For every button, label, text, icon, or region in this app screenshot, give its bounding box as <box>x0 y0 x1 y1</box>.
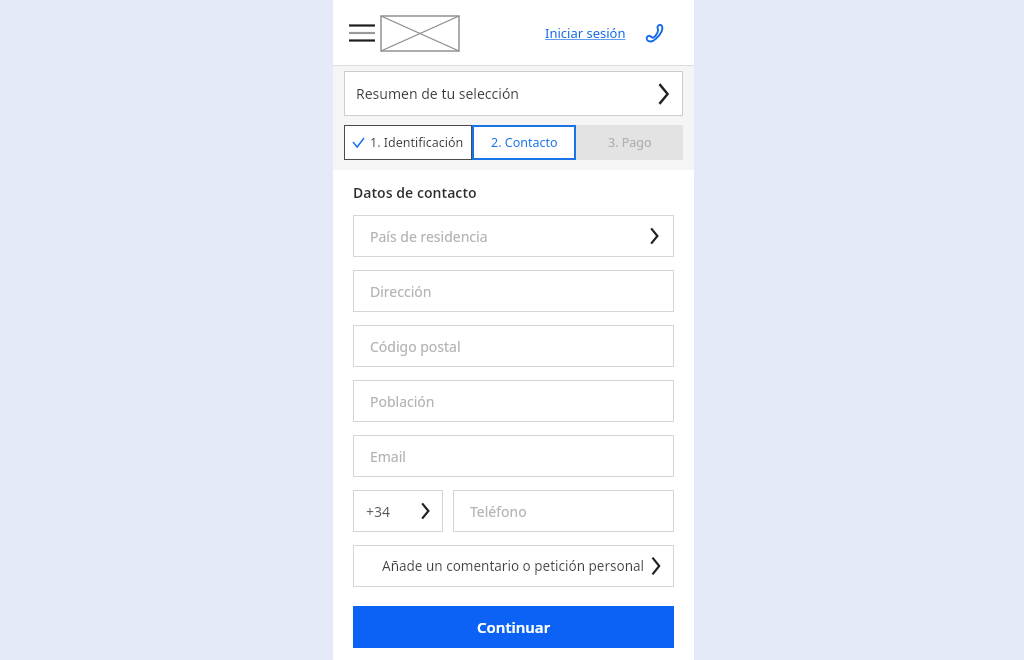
button[interactable]: Código postal <box>353 325 674 367</box>
button[interactable]: Teléfono <box>453 490 674 532</box>
button[interactable]: Dirección <box>353 270 674 312</box>
button[interactable]: Logo <box>381 16 459 51</box>
button[interactable]: 2. Contacto <box>472 125 576 160</box>
staticText: 2. Contacto <box>491 134 558 151</box>
button[interactable]: Email <box>353 435 674 477</box>
button[interactable]: Resumen de tu selección <box>344 71 683 116</box>
staticText: Código postal <box>370 337 461 356</box>
button[interactable]: Continuar <box>353 606 674 648</box>
staticText: +34 <box>366 502 391 521</box>
staticText: País de residencia <box>370 227 488 246</box>
staticText: 1. Identificación <box>370 134 464 151</box>
button[interactable]: País de residencia <box>353 215 674 257</box>
staticText: Datos de contacto <box>353 183 477 202</box>
staticText: Email <box>370 447 406 466</box>
button[interactable]: +34 <box>353 490 443 532</box>
staticText: Resumen de tu selección <box>356 84 520 103</box>
staticText: 3. Pago <box>608 134 652 151</box>
button[interactable]: Añade un comentario o petición personal <box>353 545 674 587</box>
staticText: Añade un comentario o petición personal <box>382 557 645 575</box>
staticText: Población <box>370 392 435 411</box>
button[interactable]: Iniciar sesión <box>545 24 626 42</box>
button[interactable]: 1. Identificación <box>344 125 472 160</box>
staticText: Dirección <box>370 282 432 301</box>
button[interactable]: Menu <box>345 16 379 50</box>
button[interactable]: Población <box>353 380 674 422</box>
staticText: Teléfono <box>470 502 527 521</box>
staticText: Continuar <box>477 617 551 637</box>
staticText: Iniciar sesión <box>545 24 626 42</box>
button[interactable]: Call <box>640 18 670 48</box>
button[interactable]: 3. Pago <box>576 125 683 160</box>
